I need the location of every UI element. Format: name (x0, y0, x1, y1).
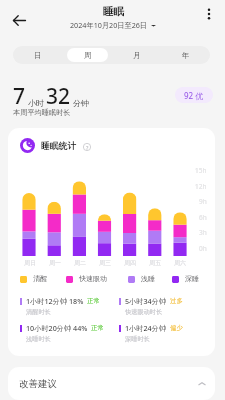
staticText: 深睡时长 (125, 335, 150, 343)
staticText: 浅睡时长 (26, 335, 51, 343)
staticText: 32 (46, 82, 71, 111)
button[interactable]: Info (83, 143, 91, 151)
staticText: 1小时24分钟 (125, 323, 167, 333)
staticText: 3h (199, 228, 207, 237)
staticText: 小时 (28, 98, 44, 108)
staticText: 睡眠 (103, 5, 124, 18)
button[interactable]: 周 (67, 48, 108, 62)
staticText: 日 (34, 51, 42, 60)
button[interactable]: 清醒 (20, 274, 47, 284)
staticText: 浅睡 (141, 274, 155, 283)
staticText: 过多 (170, 297, 183, 305)
staticText: ? (86, 144, 89, 151)
staticText: 年 (182, 51, 190, 60)
staticText: 正常 (87, 297, 100, 305)
staticText: 深睡 (185, 274, 199, 283)
staticText: 睡眠统计 (41, 141, 77, 152)
staticText: 12h (195, 182, 207, 191)
staticText: 15h (195, 166, 207, 175)
staticText: 月 (133, 51, 141, 60)
staticText: 本周平均睡眠时长 (13, 108, 71, 117)
staticText: 6h (199, 213, 207, 222)
staticText: 周日 (24, 259, 36, 267)
button[interactable]: 浅睡 (128, 274, 155, 284)
staticText: 10小时20分钟 44% (26, 323, 88, 333)
button[interactable]: 1小时24分钟 (119, 323, 183, 343)
staticText: 清醒 (33, 274, 47, 283)
staticText: 快速眼动 (79, 274, 107, 283)
button[interactable]: 快速眼动 (66, 274, 107, 284)
staticText: 正常 (91, 324, 104, 332)
button[interactable]: 日 (17, 48, 59, 62)
button[interactable]: 改善建议 (8, 367, 215, 400)
staticText: 5小时34分钟 (125, 296, 167, 306)
staticText: 9h (199, 197, 207, 206)
staticText: 周四 (124, 259, 136, 267)
staticText: 偏少 (170, 324, 183, 332)
staticText: 周一 (49, 259, 61, 267)
staticText: 清醒时长 (26, 308, 51, 316)
button[interactable]: 1小时12分钟 18% (20, 296, 100, 316)
button[interactable]: 月 (116, 48, 157, 62)
button[interactable]: More options (198, 3, 220, 25)
button[interactable]: 92 优 (175, 87, 213, 103)
staticText: 92 优 (184, 90, 204, 101)
staticText: 快速眼动时长 (125, 308, 163, 316)
button[interactable]: 5小时34分钟 (119, 296, 183, 316)
staticText: 0h (199, 244, 207, 253)
staticText: 2024年10月20日至26日 (70, 20, 148, 30)
staticText: 改善建议 (19, 378, 57, 390)
staticText: 7 (13, 82, 26, 111)
button[interactable]: 年 (165, 48, 206, 62)
button[interactable]: Back (5, 6, 33, 34)
staticText: 周 (84, 51, 92, 60)
staticText: 周三 (99, 259, 111, 267)
staticText: 周二 (74, 259, 86, 267)
button[interactable]: 深睡 (172, 274, 199, 284)
staticText: 1小时12分钟 18% (26, 296, 84, 306)
button[interactable]: 10小时20分钟 44% (20, 323, 104, 343)
staticText: 分钟 (73, 98, 89, 108)
staticText: 周五 (149, 259, 161, 267)
staticText: 周六 (174, 259, 186, 267)
